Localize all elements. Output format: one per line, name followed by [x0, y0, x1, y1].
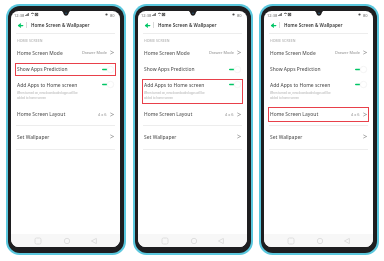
button[interactable]: Home [188, 234, 200, 247]
staticText: Add Apps to Home screen [144, 82, 205, 89]
button[interactable]: Add Apps to Home screen [138, 79, 247, 104]
staticText: Home Screen Mode [270, 50, 316, 57]
staticText: When turned on, new downloaded apps will… [144, 91, 205, 99]
button[interactable]: Home Screen Mode [264, 46, 373, 60]
button[interactable]: Add Apps to Home screen [11, 79, 120, 104]
staticText: Home Screen & Wallpaper [31, 22, 90, 28]
staticText: 12:38 [267, 13, 278, 18]
button[interactable]: Home Screen Layout [138, 107, 247, 122]
button[interactable]: Set Wallpaper [11, 130, 120, 144]
staticText: 4 x 6 [98, 112, 107, 117]
staticText: Show Apps Prediction [17, 66, 68, 73]
button[interactable]: Show Apps Prediction [138, 63, 247, 76]
staticText: 12:38 [14, 13, 25, 18]
staticText: Home Screen Layout [144, 111, 193, 118]
staticText: Show Apps Prediction [144, 66, 195, 73]
button[interactable]: Home Screen Layout [264, 107, 373, 122]
button[interactable]: Recents [32, 234, 44, 247]
staticText: Home Screen Layout [270, 111, 319, 118]
staticText: Home Screen Mode [17, 50, 63, 57]
button[interactable]: Recents [159, 234, 171, 247]
staticText: Show Apps Prediction [270, 66, 321, 73]
button[interactable]: Show Apps Prediction [264, 63, 373, 76]
staticText: Set Wallpaper [144, 134, 177, 141]
button[interactable]: Back [142, 20, 152, 30]
staticText: When turned on, new downloaded apps will… [270, 91, 331, 99]
button[interactable]: Show Apps Prediction [11, 63, 120, 76]
staticText: Home Screen Layout [17, 111, 66, 118]
button[interactable]: Back [341, 234, 353, 247]
button[interactable]: Back [215, 234, 227, 247]
staticText: Home Screen & Wallpaper [158, 22, 217, 28]
staticText: Set Wallpaper [270, 134, 303, 141]
button[interactable]: Recents [285, 234, 297, 247]
staticText: Home Screen & Wallpaper [284, 22, 343, 28]
button[interactable]: Home [61, 234, 73, 247]
staticText: Drawer Mode [209, 50, 234, 55]
staticText: 4 x 6 [351, 112, 360, 117]
staticText: 4 x 6 [225, 112, 234, 117]
staticText: 12:38 [141, 13, 152, 18]
button[interactable]: Home Screen Mode [138, 46, 247, 60]
staticText: 80 [110, 13, 115, 18]
staticText: Drawer Mode [82, 50, 107, 55]
button[interactable]: Back [15, 20, 25, 30]
button[interactable]: Home Screen Layout [11, 107, 120, 122]
staticText: Home Screen Mode [144, 50, 190, 57]
staticText: HOME SCREEN [270, 38, 296, 43]
staticText: 80 [237, 13, 242, 18]
button[interactable]: Home [314, 234, 326, 247]
staticText: HOME SCREEN [144, 38, 170, 43]
button[interactable]: Set Wallpaper [264, 130, 373, 144]
staticText: Add Apps to Home screen [17, 82, 78, 89]
staticText: Add Apps to Home screen [270, 82, 331, 89]
staticText: HOME SCREEN [17, 38, 43, 43]
button[interactable]: Set Wallpaper [138, 130, 247, 144]
button[interactable]: Add Apps to Home screen [264, 79, 373, 104]
button[interactable]: Back [88, 234, 100, 247]
staticText: 80 [363, 13, 368, 18]
staticText: When turned on, new downloaded apps will… [17, 91, 78, 99]
button[interactable]: Home Screen Mode [11, 46, 120, 60]
staticText: Set Wallpaper [17, 134, 50, 141]
button[interactable]: Back [268, 20, 278, 30]
staticText: Drawer Mode [335, 50, 360, 55]
